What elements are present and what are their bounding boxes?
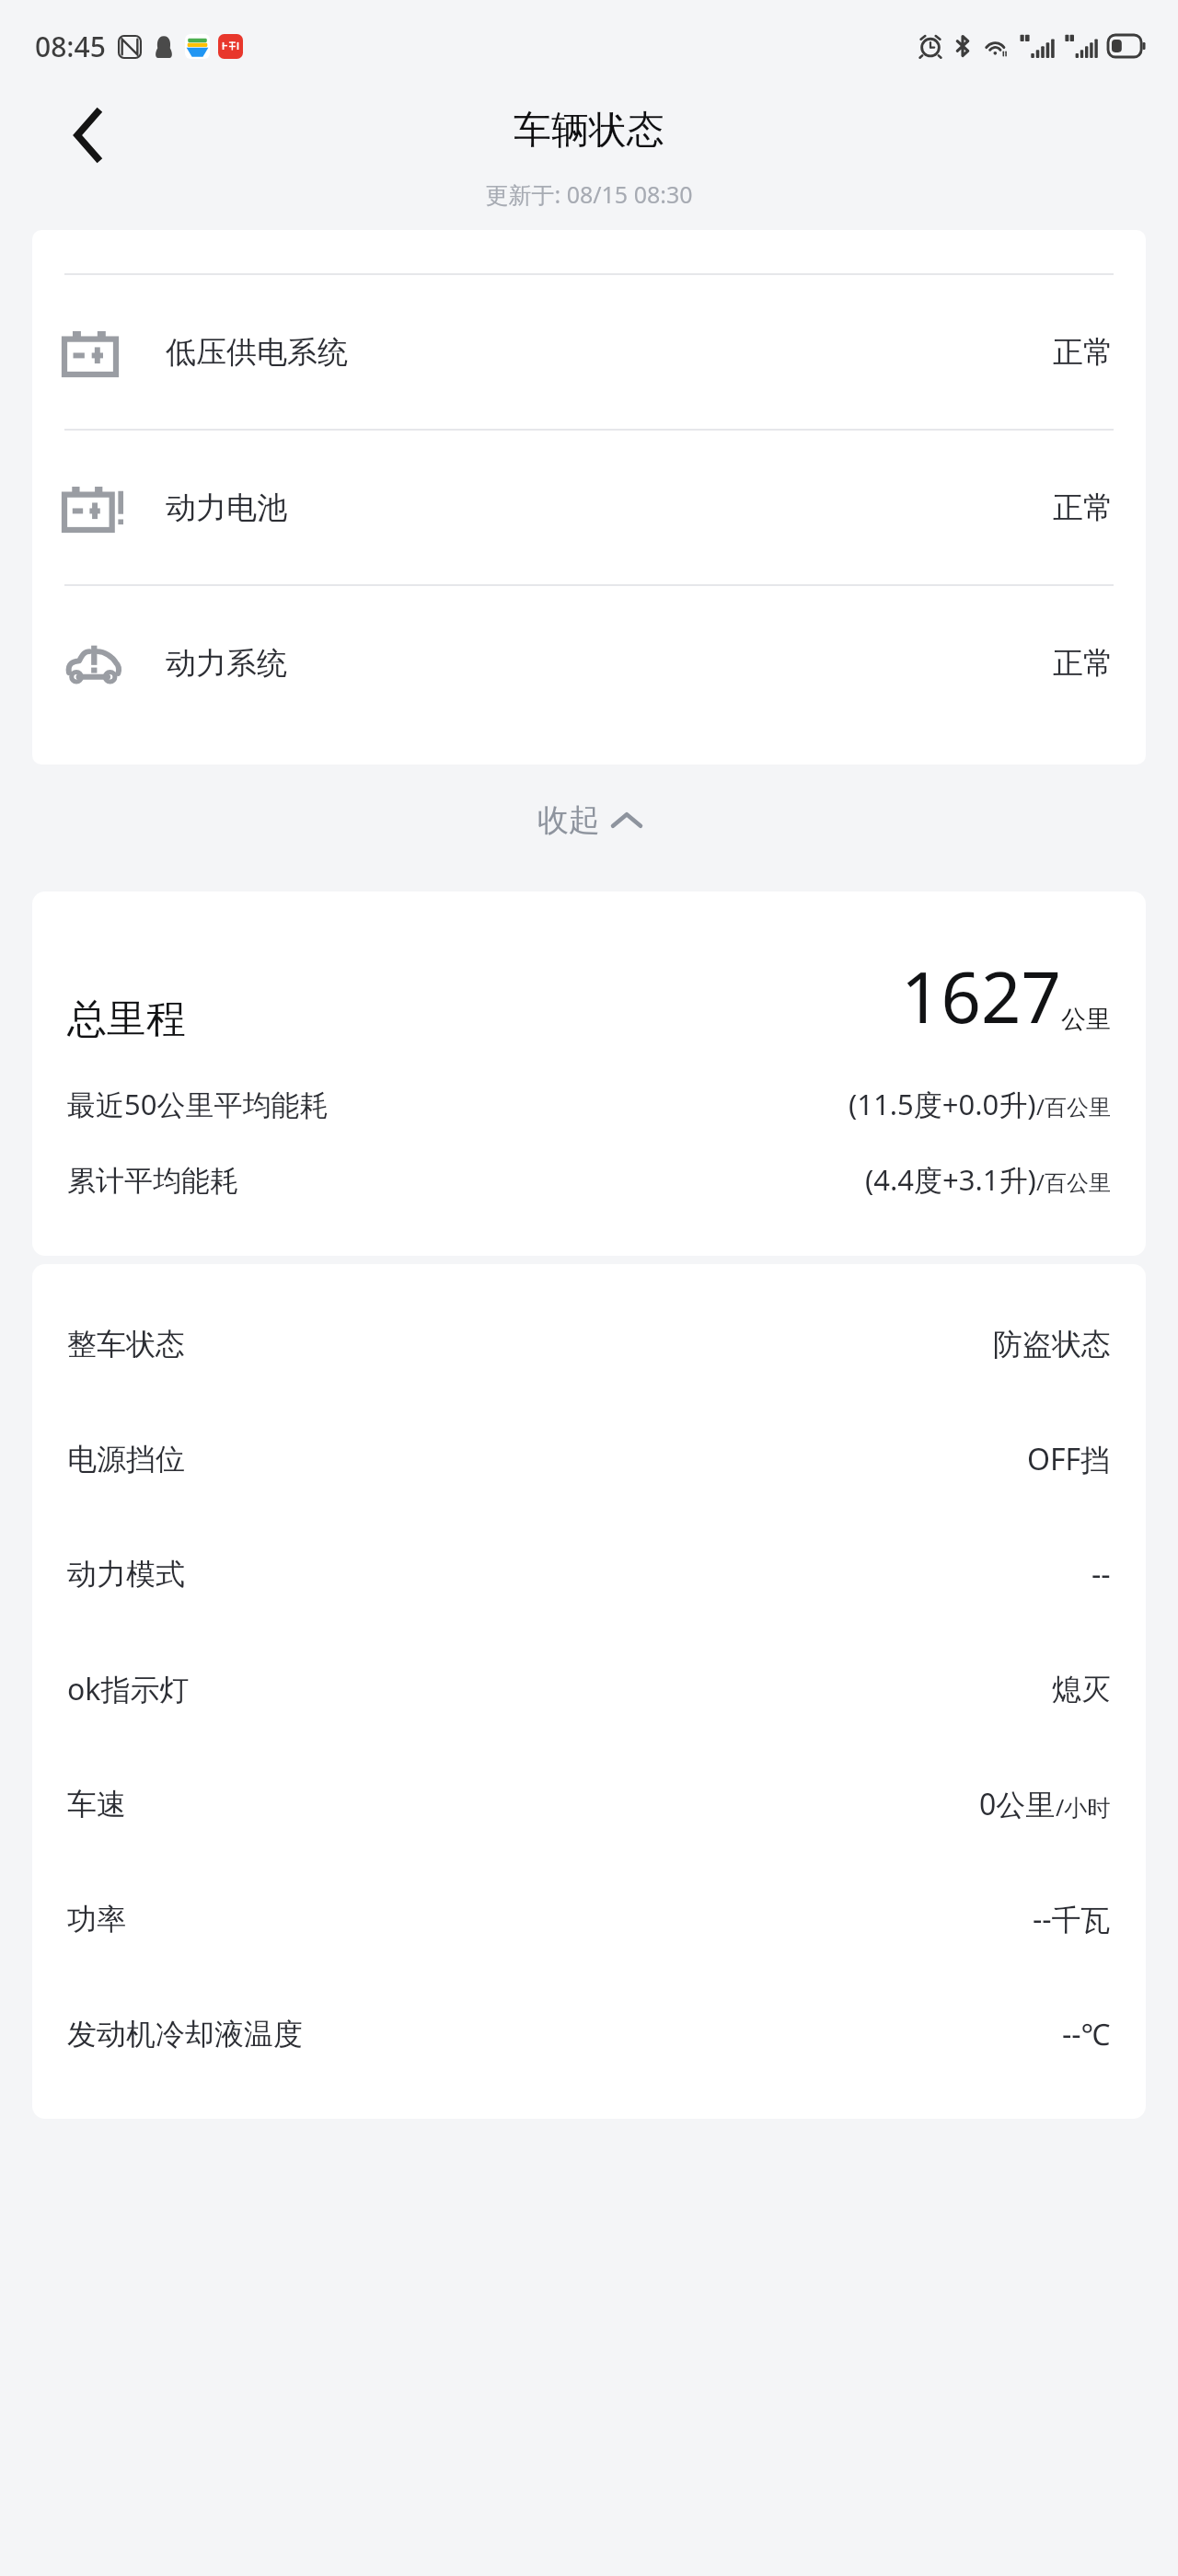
button[interactable]: 累计平均能耗 — [67, 1160, 1111, 1199]
button[interactable]: 电源挡位 — [32, 1401, 1146, 1516]
button[interactable]: 收起 — [0, 765, 1178, 875]
button[interactable]: 动力电池 — [32, 431, 1146, 584]
button[interactable]: ok指示灯 — [32, 1631, 1146, 1746]
staticText: 防盗状态 — [993, 1326, 1111, 1363]
staticText: 0公里 — [979, 1784, 1056, 1824]
button[interactable]: 动力系统 — [32, 586, 1146, 740]
staticText: 动力电池 — [166, 489, 287, 527]
staticText: -- — [1091, 1554, 1111, 1594]
staticText: --千瓦 — [1033, 1899, 1111, 1939]
staticText: 功率 — [67, 1901, 126, 1938]
staticText: 公里 — [1061, 1004, 1111, 1035]
staticText: 熄灭 — [1052, 1671, 1111, 1708]
staticText: (11.5度+0.0升) — [849, 1085, 1036, 1123]
staticText: /小时 — [1056, 1791, 1111, 1823]
staticText: 收起 — [537, 800, 600, 840]
staticText: 车辆状态 — [514, 107, 664, 155]
staticText: 发动机冷却液温度 — [67, 2016, 303, 2053]
button[interactable]: 低压供电系统 — [32, 275, 1146, 429]
button[interactable]: 车速 — [32, 1746, 1146, 1861]
staticText: 总里程 — [67, 995, 186, 1044]
staticText: 动力系统 — [166, 644, 287, 683]
button[interactable]: 最近50公里平均能耗 — [67, 1085, 1111, 1123]
staticText: 08:45 — [35, 28, 106, 65]
button[interactable]: 动力模式 — [32, 1516, 1146, 1631]
staticText: 最近50公里平均能耗 — [67, 1085, 329, 1123]
staticText: 车速 — [67, 1786, 126, 1823]
staticText: 电源挡位 — [67, 1441, 185, 1478]
staticText: 更新于: 08/15 08:30 — [485, 178, 693, 210]
staticText: /百公里 — [1036, 1167, 1111, 1197]
staticText: 1627 — [901, 949, 1061, 1044]
staticText: 整车状态 — [67, 1326, 185, 1363]
button[interactable]: 整车状态 — [32, 1286, 1146, 1401]
staticText: ok指示灯 — [67, 1669, 190, 1709]
staticText: OFF挡 — [1027, 1439, 1111, 1479]
staticText: 正常 — [1053, 489, 1114, 527]
staticText: /百公里 — [1036, 1091, 1111, 1121]
button[interactable]: Back — [53, 101, 121, 169]
staticText: 动力模式 — [67, 1556, 185, 1593]
staticText: --℃ — [1062, 2014, 1111, 2054]
staticText: 累计平均能耗 — [67, 1163, 238, 1199]
staticText: 低压供电系统 — [166, 333, 348, 372]
staticText: 正常 — [1053, 644, 1114, 683]
staticText: 正常 — [1053, 333, 1114, 372]
button[interactable]: 发动机冷却液温度 — [32, 1976, 1146, 2091]
staticText: (4.4度+3.1升) — [865, 1160, 1036, 1199]
button[interactable]: 功率 — [32, 1861, 1146, 1976]
